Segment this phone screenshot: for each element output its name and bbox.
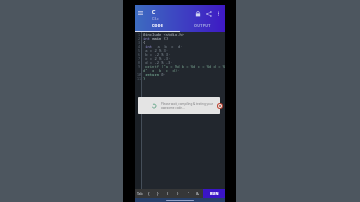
button[interactable]: Tab xyxy=(135,189,144,198)
staticText: } xyxy=(157,191,159,197)
staticText: return xyxy=(143,72,159,76)
staticText: & xyxy=(196,191,200,197)
staticText: Tab xyxy=(137,191,143,196)
button[interactable]: Please wait, compiling & testing your aw… xyxy=(138,97,220,114)
staticText: b = -2 % 3; xyxy=(143,52,171,56)
staticText: CODE xyxy=(152,23,164,28)
staticText: 1 xyxy=(138,32,140,36)
button[interactable]: Lock xyxy=(192,8,203,19)
staticText: 7 xyxy=(138,56,140,60)
staticText: 11 xyxy=(137,76,141,80)
staticText: } xyxy=(143,76,146,80)
staticText: c = 2 % -3; xyxy=(143,56,171,60)
staticText: 10 xyxy=(137,72,141,76)
staticText: ) xyxy=(177,191,179,197)
staticText: C3.c xyxy=(152,16,159,21)
button[interactable]: OUTPUT xyxy=(180,21,225,32)
button[interactable]: More options xyxy=(214,9,223,18)
staticText: #include <stdio.h> xyxy=(143,32,185,36)
button[interactable]: ) xyxy=(173,189,183,198)
staticText: { xyxy=(143,40,146,44)
staticText: Please wait, compiling & testing your aw… xyxy=(161,102,217,110)
staticText: int xyxy=(143,36,150,40)
staticText: a, b, c, d; xyxy=(153,44,183,48)
staticText: 3 xyxy=(138,40,140,44)
staticText: d = -2 % -3; xyxy=(143,60,173,64)
button[interactable]: ( xyxy=(163,189,173,198)
staticText: OUTPUT xyxy=(194,23,211,28)
staticText: RUN xyxy=(210,191,219,196)
staticText: 9 xyxy=(138,64,140,68)
button[interactable]: { xyxy=(144,189,153,198)
staticText: ( xyxy=(167,191,169,197)
button[interactable]: ' xyxy=(183,189,193,198)
staticText: 8 xyxy=(138,60,140,64)
staticText: main () xyxy=(150,36,169,40)
staticText: ' xyxy=(188,191,189,197)
button[interactable]: Cancel xyxy=(217,103,223,109)
staticText: 2 xyxy=(138,36,140,40)
staticText: { xyxy=(148,191,150,197)
staticText: 0; xyxy=(159,72,166,76)
staticText: int xyxy=(143,44,153,48)
staticText: 6 xyxy=(138,52,140,56)
button[interactable]: Menu xyxy=(135,5,145,21)
button[interactable]: RUN xyxy=(203,189,225,198)
staticText: a = 2 % 3; xyxy=(143,48,169,52)
staticText: d", a, b, c, d); xyxy=(143,68,180,72)
staticText: printf ("a = %d b = %d c = %d d = % xyxy=(143,64,225,68)
button[interactable]: CODE xyxy=(135,21,180,32)
staticText: 4 xyxy=(138,44,140,48)
button[interactable]: } xyxy=(153,189,163,198)
staticText: C xyxy=(152,8,156,15)
staticText: 5 xyxy=(138,48,140,52)
button[interactable]: & xyxy=(193,189,203,198)
button[interactable]: Share xyxy=(203,8,214,19)
